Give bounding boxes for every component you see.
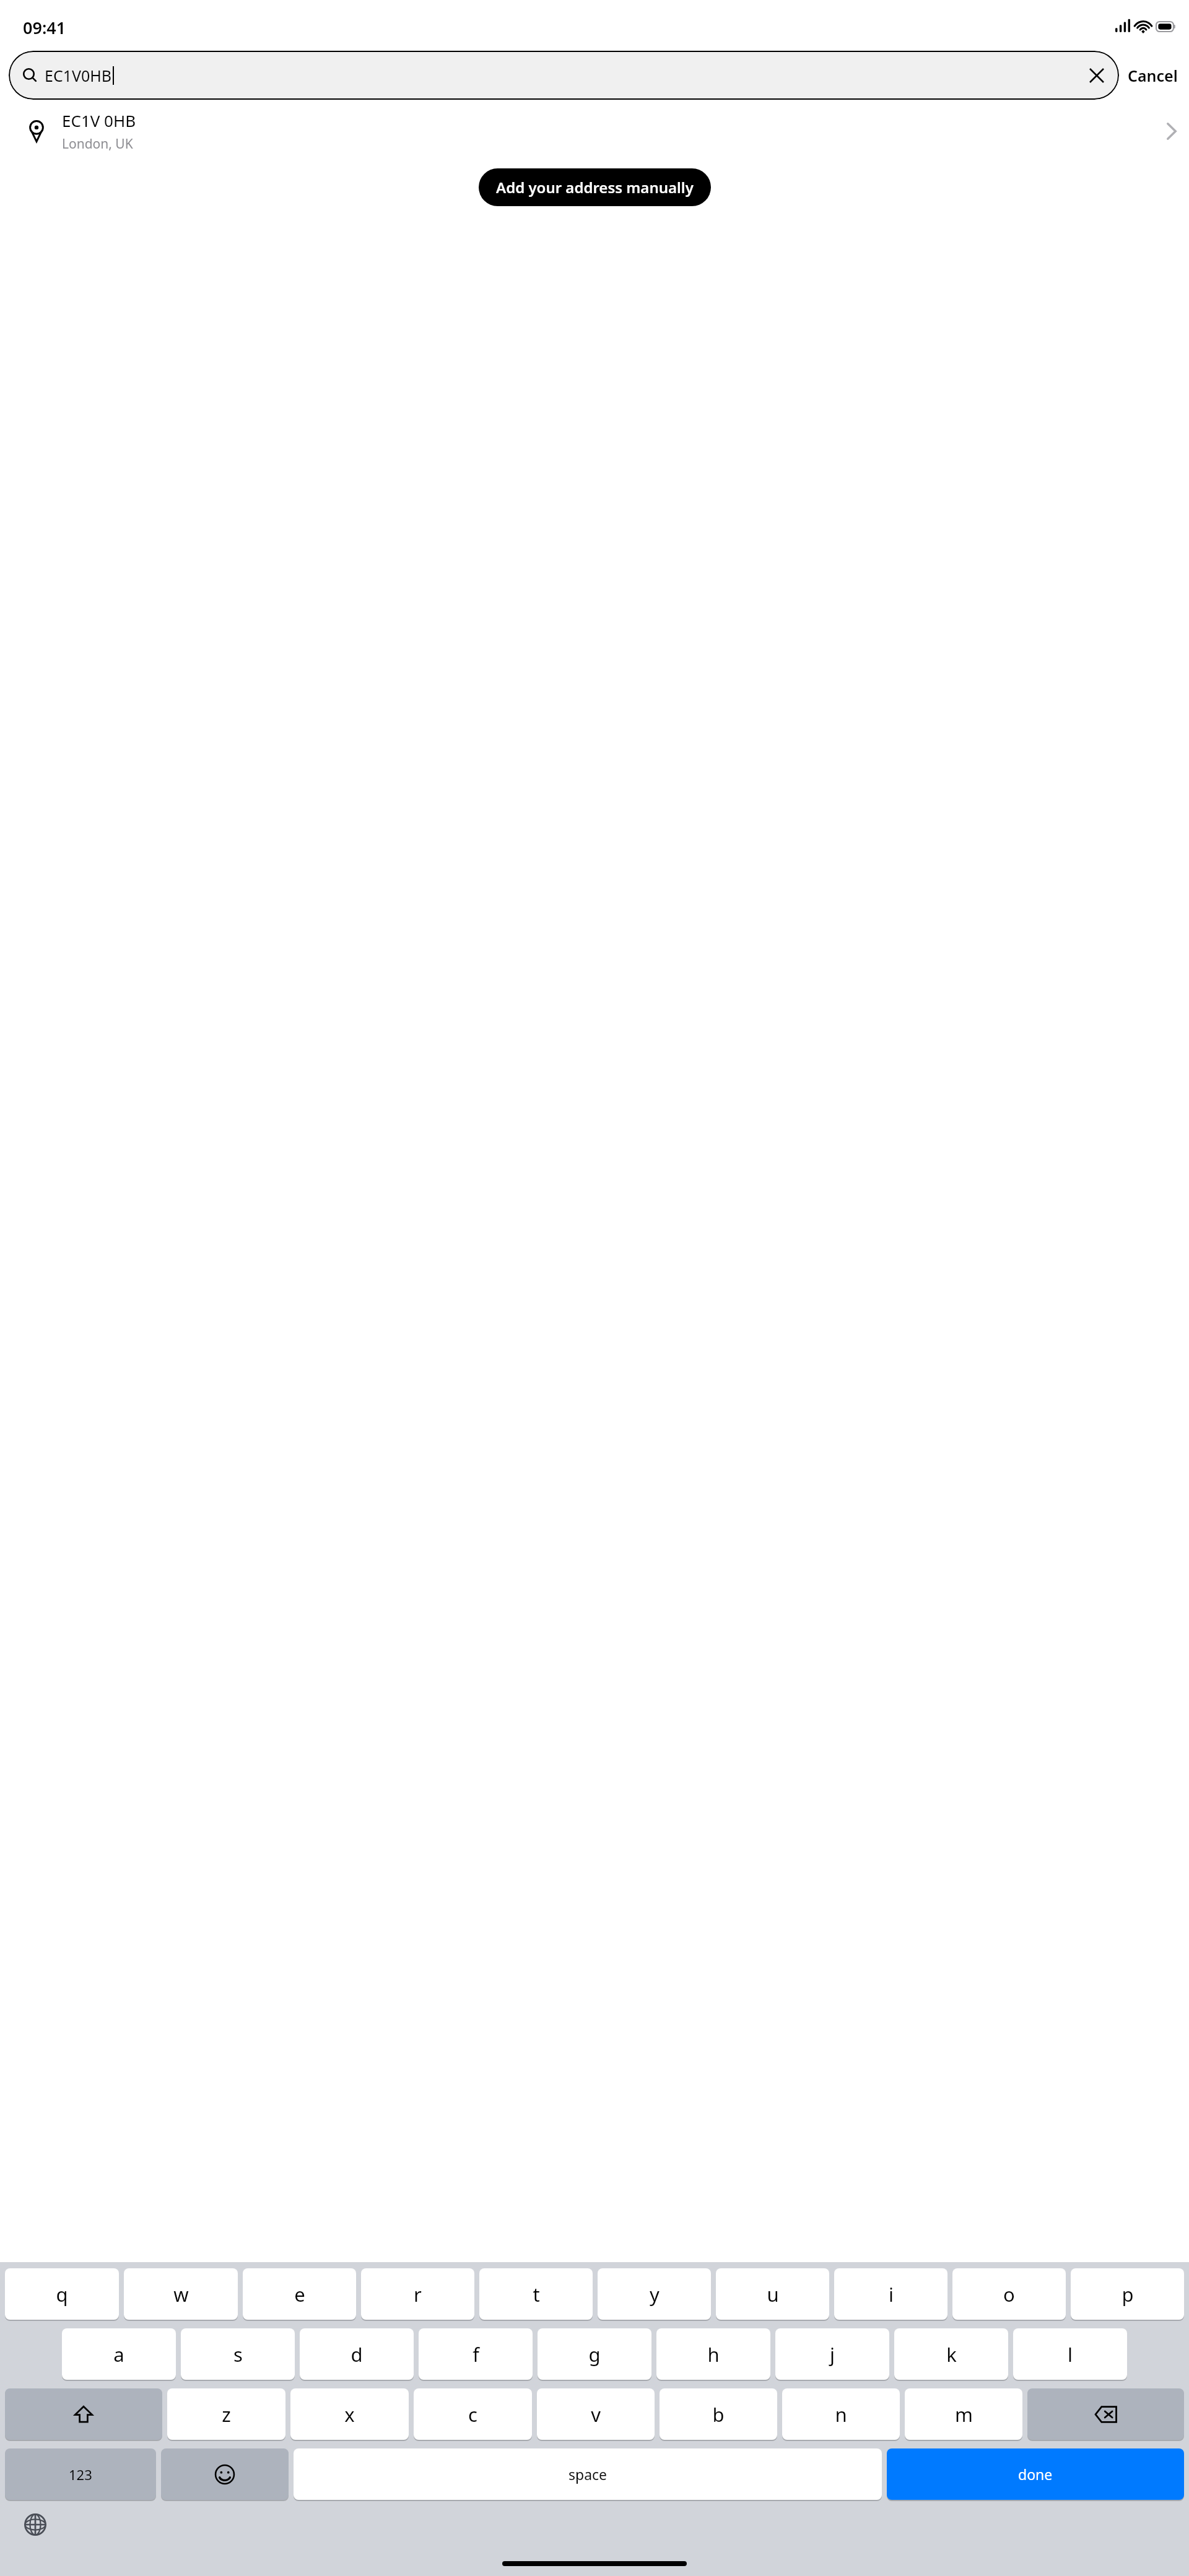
button[interactable]: z	[167, 2388, 285, 2440]
staticText: b	[712, 2401, 725, 2427]
staticText: z	[222, 2401, 231, 2427]
button[interactable]: a	[62, 2328, 176, 2380]
button[interactable]: x	[290, 2388, 409, 2440]
staticText: e	[294, 2281, 305, 2307]
button[interactable]: u	[716, 2268, 829, 2320]
button[interactable]: p	[1071, 2268, 1184, 2320]
button[interactable]: Change keyboard language	[22, 2511, 49, 2538]
staticText: EC1V 0HB	[62, 110, 136, 131]
staticText: v	[591, 2401, 601, 2427]
staticText: p	[1121, 2281, 1134, 2307]
staticText: i	[889, 2281, 894, 2307]
button[interactable]: y	[598, 2268, 711, 2320]
button[interactable]: w	[124, 2268, 238, 2320]
staticText: h	[707, 2341, 720, 2367]
staticText: 123	[69, 2465, 92, 2484]
staticText: London, UK	[62, 135, 133, 153]
button[interactable]: done	[887, 2448, 1184, 2500]
button[interactable]: Add your address manually	[479, 168, 711, 206]
staticText: d	[351, 2341, 363, 2367]
staticText: m	[955, 2401, 973, 2427]
staticText: g	[588, 2341, 601, 2367]
button[interactable]: space	[294, 2448, 882, 2500]
staticText: s	[233, 2341, 243, 2367]
button[interactable]: Clear text	[1084, 63, 1109, 88]
staticText: j	[830, 2341, 835, 2367]
button[interactable]: t	[479, 2268, 593, 2320]
staticText: o	[1003, 2281, 1015, 2307]
staticText: u	[767, 2281, 779, 2307]
staticText: k	[946, 2341, 957, 2367]
staticText: space	[568, 2465, 608, 2484]
button[interactable]: b	[660, 2388, 777, 2440]
button[interactable]: r	[361, 2268, 474, 2320]
staticText: q	[56, 2281, 68, 2307]
button[interactable]: h	[656, 2328, 770, 2380]
button[interactable]: l	[1013, 2328, 1127, 2380]
button[interactable]: d	[300, 2328, 414, 2380]
staticText: y	[650, 2281, 660, 2307]
button[interactable]: g	[538, 2328, 651, 2380]
button[interactable]: i	[834, 2268, 947, 2320]
staticText: w	[173, 2281, 189, 2307]
button[interactable]: EC1V0HB	[9, 51, 1119, 100]
staticText: EC1V0HB	[45, 65, 112, 86]
button[interactable]: 123	[5, 2448, 156, 2500]
staticText: Add your address manually	[496, 177, 694, 197]
staticText: f	[473, 2341, 479, 2367]
button[interactable]: Emoji	[161, 2448, 289, 2500]
button[interactable]: e	[243, 2268, 356, 2320]
staticText: a	[113, 2341, 124, 2367]
button[interactable]: j	[775, 2328, 889, 2380]
button[interactable]: k	[894, 2328, 1008, 2380]
staticText: c	[468, 2401, 477, 2427]
button[interactable]: Backspace	[1027, 2388, 1184, 2440]
button[interactable]: v	[537, 2388, 655, 2440]
button[interactable]: m	[905, 2388, 1022, 2440]
staticText: l	[1068, 2341, 1073, 2367]
button[interactable]: n	[782, 2388, 900, 2440]
staticText: 09:41	[23, 16, 66, 39]
button[interactable]: c	[414, 2388, 532, 2440]
staticText: r	[414, 2281, 422, 2307]
button[interactable]: f	[419, 2328, 533, 2380]
button[interactable]: s	[181, 2328, 295, 2380]
staticText: Cancel	[1128, 65, 1178, 86]
button[interactable]: EC1V 0HB	[0, 100, 1189, 162]
button[interactable]: Shift	[5, 2388, 162, 2440]
button[interactable]: o	[952, 2268, 1066, 2320]
button[interactable]: Cancel	[1125, 60, 1180, 91]
staticText: done	[1018, 2465, 1053, 2484]
button[interactable]: q	[5, 2268, 119, 2320]
staticText: x	[344, 2401, 355, 2427]
staticText: n	[835, 2401, 847, 2427]
staticText: t	[533, 2281, 540, 2307]
